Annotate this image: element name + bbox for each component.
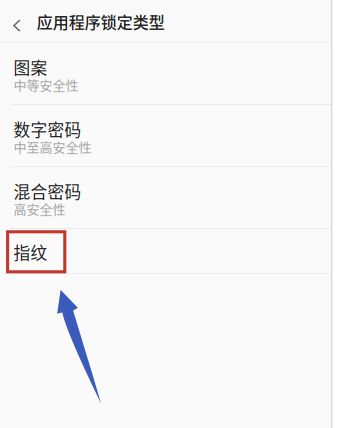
staticText: 高安全性: [13, 199, 65, 218]
button[interactable]: Back: [0, 3, 37, 44]
staticText: 应用程序锁定类型: [37, 10, 165, 33]
staticText: 混合密码: [13, 179, 81, 203]
button[interactable]: 数字密码: [0, 105, 331, 166]
staticText: 中等安全性: [13, 75, 78, 94]
staticText: 数字密码: [13, 117, 81, 141]
staticText: 中至高安全性: [13, 137, 91, 156]
button[interactable]: 混合密码: [0, 167, 331, 228]
button[interactable]: 指纹: [0, 229, 331, 273]
button[interactable]: 应用程序锁定类型: [37, 0, 165, 47]
staticText: 图案: [13, 55, 47, 79]
staticText: 指纹: [13, 240, 47, 264]
button[interactable]: 图案: [0, 43, 331, 104]
